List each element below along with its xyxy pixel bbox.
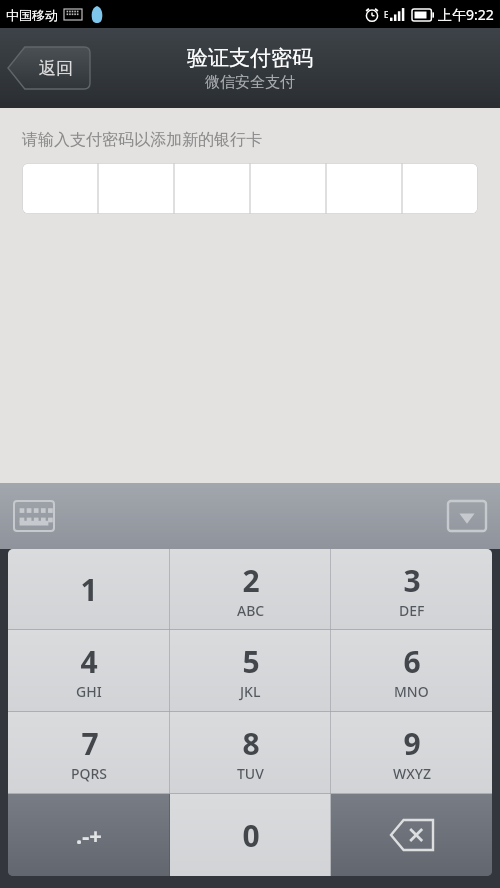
staticText: TUV (237, 764, 264, 783)
button[interactable]: 3 (331, 549, 492, 630)
staticText: JKL (240, 682, 261, 701)
button[interactable]: 1 (8, 549, 170, 630)
staticText: 4 (80, 641, 98, 682)
staticText: 9 (403, 723, 421, 764)
staticText: 微信安全支付 (205, 73, 295, 92)
staticText: PQRS (71, 764, 108, 783)
button[interactable]: 8 (170, 712, 331, 794)
staticText: GHI (76, 682, 102, 701)
button[interactable]: 6 (331, 630, 492, 712)
staticText: 5 (242, 641, 260, 682)
staticText: 6 (403, 641, 421, 682)
staticText: 中国移动 (6, 7, 58, 23)
staticText: 8 (242, 723, 260, 764)
button[interactable]: 返回 (8, 47, 90, 89)
button[interactable]: .-+ (8, 794, 170, 876)
staticText: 请输入支付密码以添加新的银行卡 (22, 130, 262, 150)
button[interactable]: Switch keyboard (14, 501, 54, 531)
button[interactable]: Hide keyboard (448, 501, 486, 531)
staticText: ABC (237, 601, 265, 620)
button[interactable]: 7 (8, 712, 170, 794)
staticText: 1 (80, 569, 98, 610)
staticText: 3 (403, 560, 421, 601)
staticText: 上午9:22 (438, 5, 494, 24)
button[interactable]: 4 (8, 630, 170, 712)
staticText: MNO (394, 682, 429, 701)
button[interactable]: Delete (331, 794, 492, 876)
staticText: DEF (399, 601, 425, 620)
button[interactable]: 5 (170, 630, 331, 712)
staticText: 7 (81, 723, 99, 764)
staticText: 0 (242, 815, 260, 856)
button[interactable]: 2 (170, 549, 331, 630)
button[interactable]: 9 (331, 712, 492, 794)
button[interactable] (22, 163, 478, 214)
staticText: .-+ (76, 820, 102, 850)
staticText: WXYZ (393, 764, 431, 783)
button[interactable]: 0 (170, 794, 331, 876)
staticText: E (384, 9, 389, 20)
staticText: 返回 (39, 58, 73, 79)
staticText: 2 (242, 560, 260, 601)
staticText: 验证支付密码 (187, 45, 313, 71)
